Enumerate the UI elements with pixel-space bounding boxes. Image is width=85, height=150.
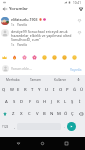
button[interactable]: P xyxy=(64,84,71,96)
button[interactable]: Backspace xyxy=(76,108,85,120)
button[interactable]: G xyxy=(34,96,41,108)
button[interactable]: elifatsurlu.1903 xyxy=(0,17,85,27)
button[interactable]: Ü xyxy=(78,84,85,96)
staticText: 1s xyxy=(11,23,15,27)
staticText: F xyxy=(29,99,32,105)
button[interactable]: Y xyxy=(36,84,43,96)
staticText: 10:41 xyxy=(73,1,81,5)
button[interactable]: Fire emoji xyxy=(12,55,17,60)
button[interactable]: S xyxy=(10,96,18,108)
button[interactable]: Z xyxy=(9,108,17,120)
staticText: J xyxy=(51,99,53,105)
button[interactable]: Emoji xyxy=(72,55,77,60)
button[interactable]: Send xyxy=(67,122,76,131)
staticText: N xyxy=(50,111,54,117)
button[interactable]: M xyxy=(55,108,62,120)
button[interactable]: J xyxy=(48,96,55,108)
button[interactable]: R xyxy=(22,84,29,96)
button[interactable]: Flower emoji xyxy=(22,55,27,60)
button[interactable]: Comma xyxy=(11,120,17,133)
button[interactable]: Merhaba xyxy=(1,75,24,84)
staticText: U xyxy=(45,87,49,93)
staticText: Ü xyxy=(80,87,84,93)
button[interactable]: Crown emoji xyxy=(2,55,7,60)
button[interactable]: Shift xyxy=(0,108,9,120)
button[interactable]: W xyxy=(8,84,15,96)
button[interactable]: Yanıtla xyxy=(17,43,27,47)
button[interactable]: Ç xyxy=(69,108,76,120)
button[interactable]: Ö xyxy=(62,108,69,120)
staticText: Ö xyxy=(64,111,68,117)
button[interactable]: F xyxy=(26,96,34,108)
staticText: Yorum ekle... xyxy=(11,66,32,71)
staticText: Yanıtla xyxy=(17,23,27,27)
button[interactable]: A xyxy=(2,96,10,108)
button[interactable]: Tamam xyxy=(24,75,48,84)
button[interactable]: İ xyxy=(76,96,83,108)
button[interactable]: ?123 xyxy=(0,120,11,133)
staticText: Z xyxy=(12,111,15,117)
staticText: . xyxy=(64,124,65,129)
staticText: S xyxy=(13,99,16,105)
button[interactable]: Ş xyxy=(69,96,76,108)
button[interactable]: Q xyxy=(0,84,8,96)
staticText: Ş xyxy=(71,99,74,105)
button[interactable]: Voice input xyxy=(72,75,85,84)
button[interactable]: D xyxy=(18,96,26,108)
button[interactable]: Recents xyxy=(61,138,72,149)
button[interactable]: B xyxy=(41,108,48,120)
staticText: E xyxy=(17,87,20,93)
button[interactable]: Like xyxy=(76,29,83,37)
button[interactable]: I xyxy=(50,84,57,96)
button[interactable]: Emoji xyxy=(52,55,57,60)
button[interactable]: Ğ xyxy=(71,84,78,96)
button[interactable]: Back xyxy=(0,5,9,13)
staticText: O xyxy=(59,87,63,93)
staticText: destiye99 Sonuchaol ericeydi anuk hazard… xyxy=(11,29,72,42)
staticText: K xyxy=(57,99,60,105)
staticText: Tamam xyxy=(30,78,42,82)
button[interactable]: H xyxy=(41,96,48,108)
button[interactable]: X xyxy=(17,108,25,120)
staticText: Yanıtla xyxy=(17,43,27,47)
staticText: R xyxy=(24,87,27,93)
staticText: Kullanın xyxy=(54,78,67,82)
button[interactable]: Kullanın xyxy=(48,75,72,84)
staticText: Ç xyxy=(71,111,74,117)
button[interactable]: Home xyxy=(37,138,48,149)
staticText: , xyxy=(14,124,15,129)
button[interactable]: N xyxy=(48,108,55,120)
button[interactable]: Share xyxy=(76,5,85,13)
button[interactable]: L xyxy=(62,96,69,108)
button[interactable]: Flower emoji xyxy=(32,55,37,60)
button[interactable]: T xyxy=(29,84,36,96)
staticText: H xyxy=(43,99,47,105)
staticText: P xyxy=(66,87,69,93)
staticText: X xyxy=(20,111,23,117)
button[interactable]: Emoji xyxy=(62,55,67,60)
staticText: 1s xyxy=(11,43,15,47)
button[interactable]: Yanıtla xyxy=(17,23,27,27)
staticText: L xyxy=(64,99,67,105)
button[interactable]: destiye99 Sonuchaol ericeydi anuk hazard… xyxy=(0,29,85,47)
button[interactable]: Like xyxy=(76,17,83,25)
staticText: İ xyxy=(79,99,81,105)
button[interactable]: C xyxy=(25,108,33,120)
button[interactable]: O xyxy=(57,84,64,96)
button[interactable]: V xyxy=(33,108,41,120)
staticText: elifatsurlu.1903 xyxy=(11,17,38,22)
staticText: M xyxy=(57,111,61,117)
button[interactable]: E xyxy=(15,84,22,96)
button[interactable]: K xyxy=(55,96,62,108)
staticText: T xyxy=(31,87,34,93)
staticText: ?123 xyxy=(2,125,9,129)
button[interactable]: Back xyxy=(13,138,24,149)
button[interactable]: Emoji xyxy=(42,55,47,60)
staticText: D xyxy=(20,99,24,105)
staticText: Yayınla xyxy=(70,67,82,71)
button[interactable]: Yayınla xyxy=(69,66,83,72)
staticText: A xyxy=(5,99,8,105)
button[interactable]: U xyxy=(43,84,50,96)
